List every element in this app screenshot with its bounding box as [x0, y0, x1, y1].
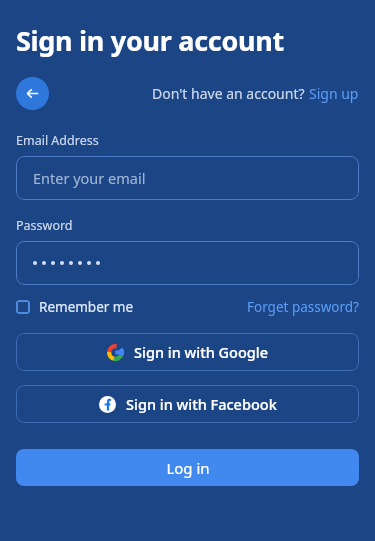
button[interactable]: Forget password? — [247, 298, 359, 316]
staticText: Log in — [166, 458, 210, 478]
staticText: Sign in with Google — [134, 342, 269, 362]
button[interactable] — [16, 241, 359, 285]
button[interactable]: Sign up — [309, 84, 359, 103]
staticText: Sign in with Facebook — [126, 394, 277, 414]
staticText: Email Address — [16, 132, 99, 149]
staticText: Forget password? — [247, 298, 359, 316]
button[interactable]: Sign in with Google — [16, 333, 359, 371]
staticText: Enter your email — [33, 168, 146, 188]
button[interactable]: Enter your email — [16, 156, 359, 200]
button[interactable]: Remember me — [16, 298, 134, 316]
button[interactable]: Back — [16, 77, 49, 110]
staticText: Password — [16, 217, 73, 234]
staticText: Remember me — [39, 298, 134, 316]
staticText: Sign up — [309, 84, 359, 103]
button[interactable]: Sign in with Facebook — [16, 385, 359, 423]
button[interactable]: Log in — [16, 449, 359, 486]
staticText: Don't have an account? — [152, 84, 309, 103]
staticText: Sign in your account — [16, 22, 284, 59]
